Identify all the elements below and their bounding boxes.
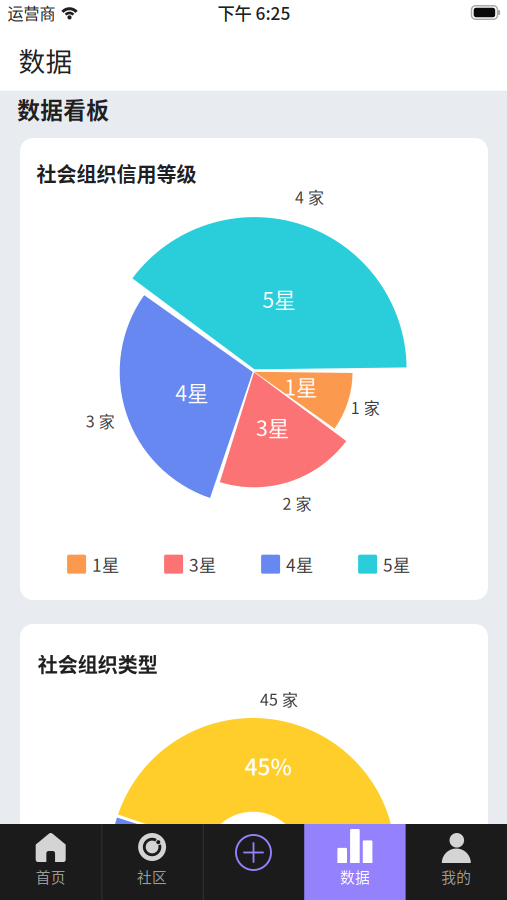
- button[interactable]: 首页: [0, 824, 101, 900]
- button[interactable]: 新建: [203, 824, 304, 900]
- staticText: 社会组织类型: [38, 649, 158, 678]
- staticText: 3 家: [86, 409, 115, 432]
- staticText: 4星: [175, 377, 208, 407]
- staticText: 3星: [256, 412, 289, 442]
- staticText: 4星: [286, 552, 313, 577]
- staticText: 首页: [36, 866, 66, 887]
- staticText: 社会组织信用等级: [37, 159, 197, 188]
- staticText: 5星: [383, 552, 410, 577]
- staticText: 3星: [189, 552, 216, 577]
- staticText: 社区: [137, 866, 167, 887]
- button[interactable]: 我的: [406, 824, 507, 900]
- button[interactable]: 数据: [304, 824, 406, 900]
- staticText: 数据: [18, 40, 72, 79]
- staticText: 1星: [284, 371, 317, 402]
- staticText: 运营商: [7, 1, 55, 24]
- button[interactable]: 社区: [101, 824, 203, 900]
- staticText: 1 家: [351, 395, 380, 419]
- staticText: 2 家: [282, 491, 311, 514]
- staticText: 数据看板: [17, 92, 109, 125]
- staticText: 1星: [92, 552, 119, 577]
- staticText: 我的: [441, 866, 471, 887]
- staticText: 下午 6:25: [217, 0, 290, 25]
- staticText: 5星: [262, 283, 295, 314]
- staticText: 45 家: [260, 687, 298, 710]
- staticText: 4 家: [295, 185, 324, 208]
- staticText: 数据: [340, 866, 370, 887]
- staticText: 45%: [244, 749, 291, 782]
